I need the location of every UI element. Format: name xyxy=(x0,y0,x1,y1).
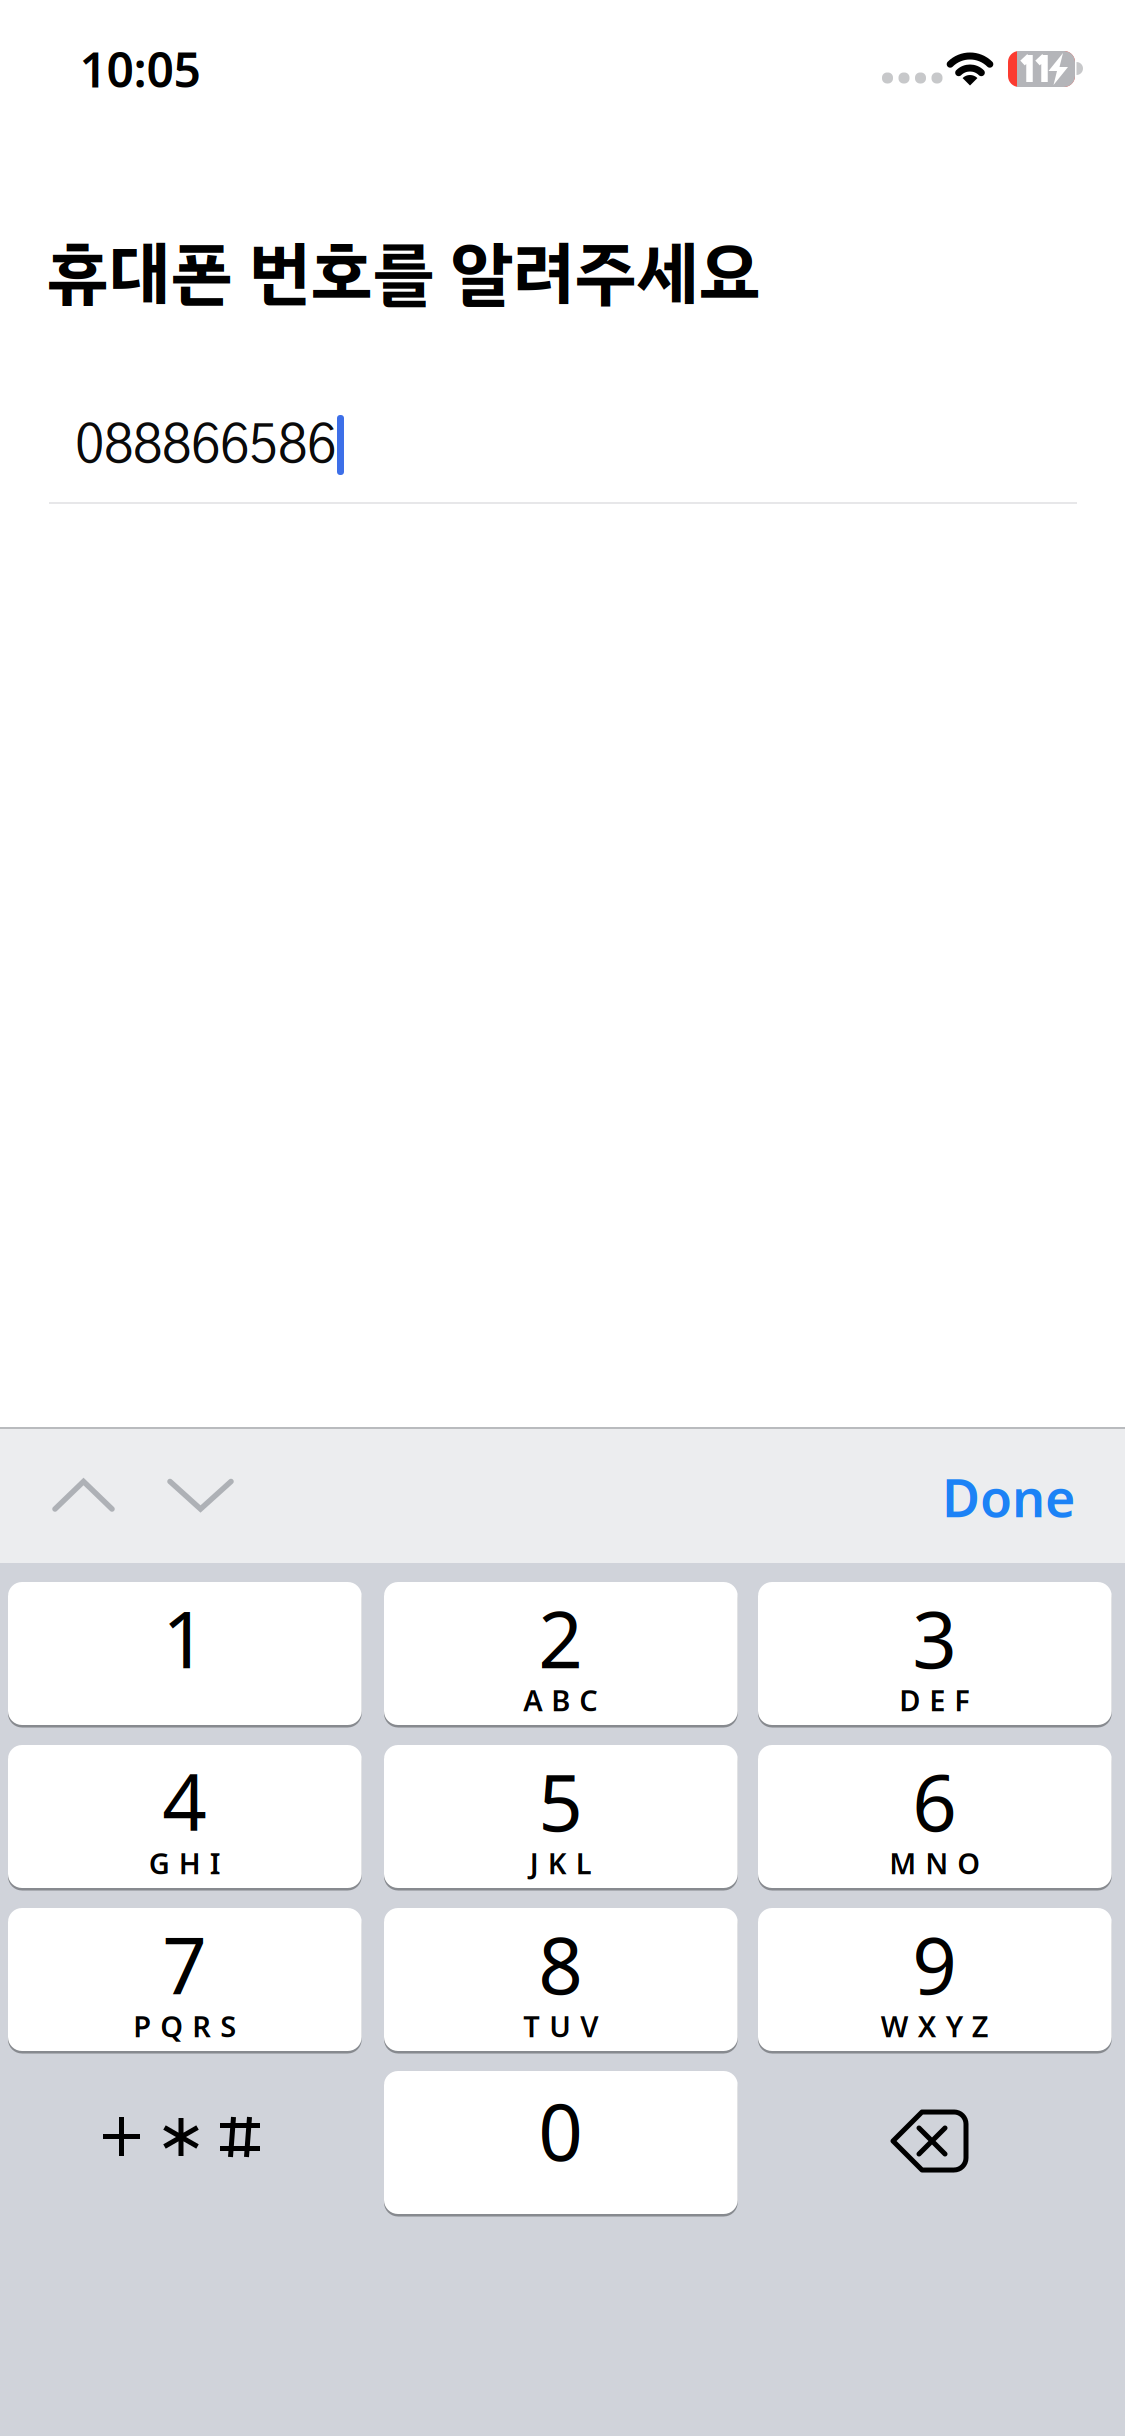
staticText: Done xyxy=(942,1462,1075,1532)
button[interactable]: Next field xyxy=(155,1479,246,1539)
button[interactable]: 6 xyxy=(758,1745,1112,1888)
button[interactable]: 7 xyxy=(8,1908,362,2051)
button[interactable]: 5 xyxy=(384,1745,738,1888)
staticText: 휴대폰 번호를 알려주세요 xyxy=(47,222,761,325)
staticText: 8 xyxy=(538,1911,583,2017)
staticText: 9 xyxy=(912,1911,957,2017)
staticText: JKL xyxy=(530,1843,592,1883)
staticText: TUV xyxy=(523,2006,598,2046)
button[interactable]: Previous field xyxy=(40,1479,127,1539)
button[interactable]: Done xyxy=(912,1429,1125,1565)
staticText: ABC xyxy=(523,1680,598,1720)
staticText: 4 xyxy=(162,1748,207,1854)
button[interactable]: 9 xyxy=(758,1908,1112,2051)
button[interactable]: 0 xyxy=(384,2071,738,2214)
button[interactable]: 1 xyxy=(8,1582,362,1725)
button[interactable]: Delete xyxy=(758,2071,1112,2214)
staticText: GHI xyxy=(149,1843,221,1883)
staticText: PQRS xyxy=(133,2006,236,2046)
staticText: MNO xyxy=(889,1843,980,1883)
button[interactable]: 4 xyxy=(8,1745,362,1888)
staticText: 088866586 xyxy=(75,420,336,473)
staticText: 0 xyxy=(538,2077,583,2184)
staticText: DEF xyxy=(899,1680,970,1720)
staticText: 1 xyxy=(162,1585,207,1691)
button[interactable]: Phone number xyxy=(0,0,1028,60)
button[interactable]: Plus star hash xyxy=(8,2071,362,2214)
staticText: WXYZ xyxy=(881,2006,989,2046)
button[interactable]: 3 xyxy=(758,1582,1112,1725)
staticText: 3 xyxy=(912,1585,957,1691)
staticText: 7 xyxy=(162,1911,207,2017)
button[interactable]: 8 xyxy=(384,1908,738,2051)
button[interactable]: 2 xyxy=(384,1582,738,1725)
staticText: 5 xyxy=(538,1748,583,1854)
staticText: 10:05 xyxy=(79,36,200,102)
staticText: 2 xyxy=(538,1585,583,1691)
staticText: 6 xyxy=(912,1748,957,1854)
